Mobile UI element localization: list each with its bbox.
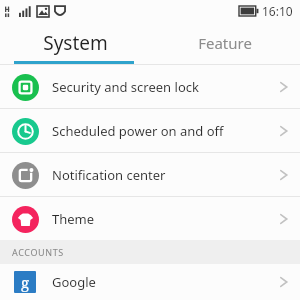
staticText: Google (52, 273, 96, 291)
staticText: 16:10 (262, 3, 293, 19)
staticText: Theme (52, 210, 95, 228)
button[interactable]: Notification center (0, 153, 300, 196)
staticText: System (43, 30, 108, 56)
button[interactable]: System (0, 22, 150, 64)
staticText: ACCOUNTS (12, 246, 64, 258)
button[interactable]: Feature (150, 22, 300, 64)
staticText: Notification center (52, 166, 166, 184)
staticText: Scheduled power on and off (52, 122, 224, 140)
staticText: Security and screen lock (52, 78, 199, 96)
staticText: Feature (198, 33, 252, 53)
button[interactable]: Theme (0, 197, 300, 240)
button[interactable]: Security and screen lock (0, 65, 300, 108)
staticText: g (21, 272, 30, 292)
button[interactable]: g (0, 264, 300, 300)
button[interactable]: Scheduled power on and off (0, 109, 300, 152)
